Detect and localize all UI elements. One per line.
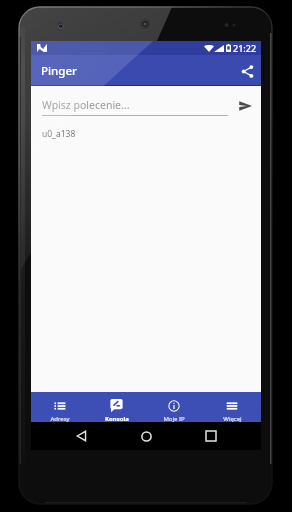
staticText: Moje IP	[163, 415, 185, 423]
staticText: Wpisz polecenie...	[42, 98, 130, 112]
button[interactable]: Recents	[200, 425, 222, 447]
button[interactable]: Send	[233, 94, 257, 118]
button[interactable]: Adresy	[31, 392, 88, 422]
button[interactable]: Moje IP	[145, 392, 203, 422]
button[interactable]: Share	[234, 58, 260, 84]
button[interactable]: Więcej	[203, 392, 261, 422]
staticText: 21:22	[233, 42, 257, 54]
staticText: Konsola	[105, 415, 129, 423]
staticText: Pinger	[41, 63, 77, 79]
staticText: u0_a138	[42, 128, 76, 140]
button[interactable]: Home	[135, 425, 157, 447]
button[interactable]: Back	[70, 425, 92, 447]
staticText: Więcej	[223, 415, 242, 423]
staticText: Adresy	[50, 415, 70, 423]
button[interactable]: Konsola	[88, 392, 145, 422]
